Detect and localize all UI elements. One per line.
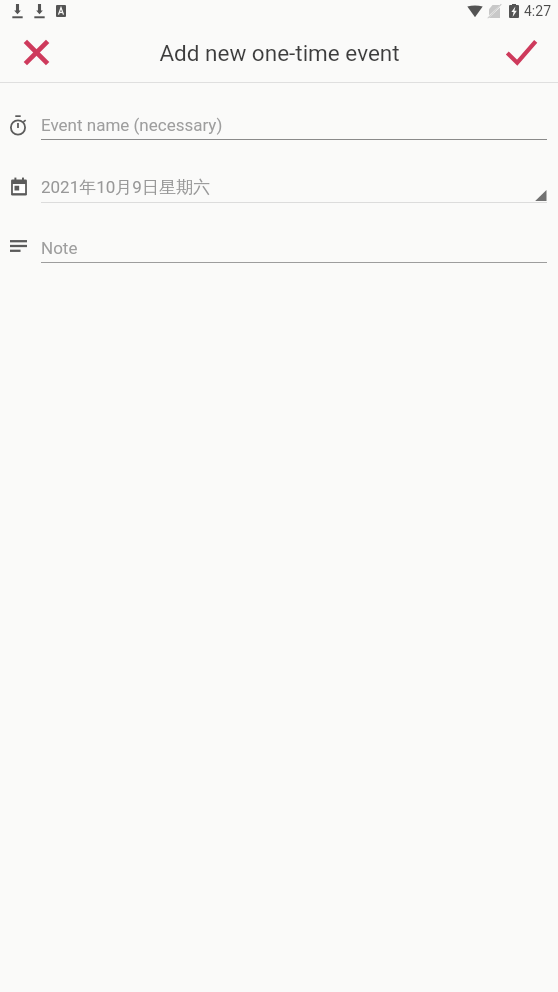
button[interactable]: Open date picker (534, 188, 547, 202)
button[interactable]: Note (0, 231, 558, 274)
button[interactable]: Date, 2021年10月9日星期六 (0, 171, 558, 214)
staticText: Note (41, 238, 78, 258)
button[interactable]: Event name, necessary (0, 108, 558, 151)
staticText: Event name (necessary) (41, 115, 223, 135)
staticText: 2021年10月9日星期六 (41, 177, 210, 198)
button[interactable]: Save event (497, 28, 545, 76)
staticText: 4:27 (524, 3, 551, 19)
button[interactable]: Discard and close (12, 28, 60, 76)
staticText: Add new one-time event (159, 40, 400, 66)
